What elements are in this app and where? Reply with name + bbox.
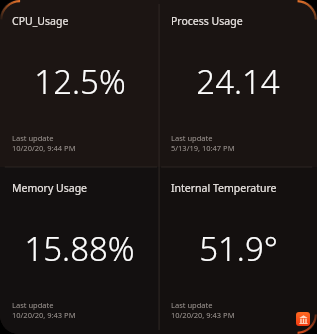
staticText: 24.14 MB	[169, 59, 307, 104]
button[interactable]: CPU_Usage	[0, 0, 159, 167]
staticText: Internal Temperature	[171, 181, 277, 195]
staticText: 51.9°	[199, 226, 278, 271]
staticText: 15.88%	[24, 226, 135, 271]
staticText: 10/20/20, 9:44 PM	[12, 143, 76, 153]
staticText: Last update	[171, 300, 213, 310]
staticText: Last update	[12, 133, 54, 143]
staticText: 12.5%	[34, 59, 126, 104]
staticText: 5/13/19, 10:47 PM	[171, 143, 235, 153]
staticText: CPU_Usage	[12, 14, 69, 28]
staticText: Memory Usage	[12, 181, 88, 195]
staticText: Last update	[171, 133, 213, 143]
staticText: Last update	[12, 300, 54, 310]
staticText: Process Usage	[171, 14, 243, 28]
button[interactable]: Memory Usage	[0, 167, 159, 334]
button[interactable]: App info	[296, 312, 310, 326]
staticText: 10/20/20, 9:43 PM	[171, 310, 235, 320]
button[interactable]: Internal Temperature	[159, 167, 317, 334]
staticText: 10/20/20, 9:43 PM	[12, 310, 76, 320]
button[interactable]: Process Usage	[159, 0, 317, 167]
